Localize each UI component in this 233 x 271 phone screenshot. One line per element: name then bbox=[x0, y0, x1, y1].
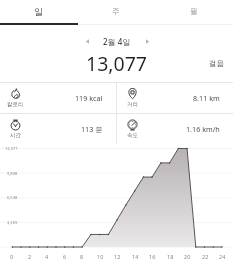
staticText: 9,808 bbox=[7, 171, 18, 176]
button[interactable]: 거리 bbox=[117, 83, 233, 113]
staticText: 13,077 bbox=[86, 50, 147, 77]
staticText: 2 bbox=[28, 253, 32, 260]
staticText: 119 kcal bbox=[75, 93, 103, 103]
staticText: 12 bbox=[114, 253, 121, 260]
staticText: 1.16 km/h bbox=[186, 124, 220, 134]
staticText: 20 bbox=[184, 253, 191, 260]
staticText: 113 분 bbox=[81, 124, 103, 134]
staticText: 일 bbox=[34, 6, 43, 17]
button[interactable]: 월 bbox=[155, 0, 233, 23]
button[interactable]: 칼로리 bbox=[0, 83, 116, 113]
staticText: 24 bbox=[219, 253, 226, 260]
button[interactable]: 시간 bbox=[0, 114, 116, 144]
staticText: 시간 bbox=[10, 132, 21, 139]
staticText: 월 bbox=[190, 7, 198, 16]
button[interactable]: 속도 bbox=[117, 114, 233, 144]
staticText: 10 bbox=[97, 253, 104, 260]
staticText: 18 bbox=[167, 253, 174, 260]
button[interactable]: Next day bbox=[140, 34, 154, 48]
staticText: 4 bbox=[45, 253, 49, 260]
staticText: 8.11 km bbox=[193, 93, 220, 103]
staticText: 걸음 bbox=[209, 59, 224, 68]
staticText: 16 bbox=[149, 253, 156, 260]
staticText: 6 bbox=[63, 253, 67, 260]
button[interactable]: 일 bbox=[0, 0, 77, 23]
staticText: 22 bbox=[202, 253, 209, 260]
staticText: 14 bbox=[132, 253, 139, 260]
staticText: 8 bbox=[80, 253, 84, 260]
staticText: 거리 bbox=[127, 101, 138, 108]
staticText: 3,269 bbox=[7, 220, 18, 225]
staticText: 0 bbox=[10, 253, 14, 260]
staticText: 2월 4일 bbox=[103, 36, 131, 47]
button[interactable]: 주 bbox=[77, 0, 155, 23]
staticText: 6,538 bbox=[7, 195, 18, 200]
staticText: 주 bbox=[112, 7, 120, 16]
staticText: 칼로리 bbox=[7, 101, 24, 108]
staticText: 속도 bbox=[127, 132, 138, 139]
button[interactable]: Previous day bbox=[80, 34, 94, 48]
staticText: 13,077 bbox=[5, 146, 18, 151]
